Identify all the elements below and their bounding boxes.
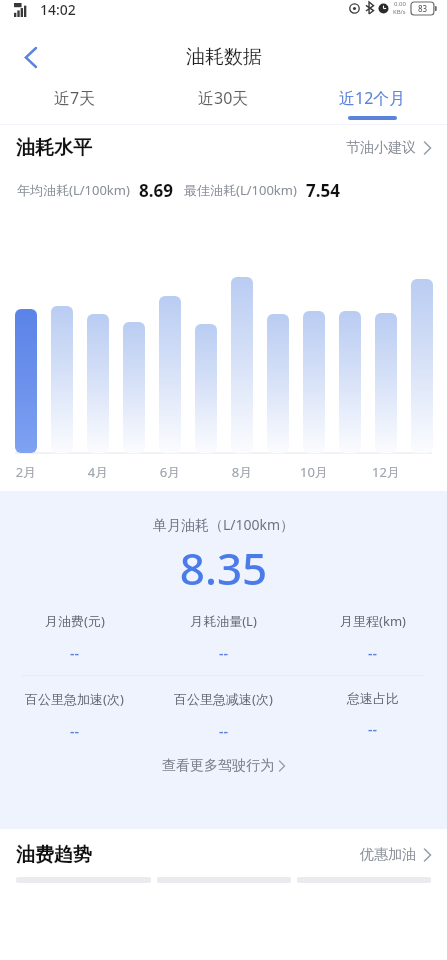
staticText: 年均油耗(L/100km) <box>17 181 130 199</box>
staticText: -- <box>219 644 228 663</box>
staticText: 油费趋势 <box>16 843 92 867</box>
staticText: 14:02 <box>40 0 76 19</box>
staticText: 百公里急减速(次) <box>174 690 273 708</box>
staticText: 百公里急加速(次) <box>25 690 124 708</box>
staticText: 节油小建议 <box>346 139 416 157</box>
staticText: 怠速占比 <box>347 690 399 706</box>
staticText: 月里程(km) <box>340 612 406 630</box>
staticText: 近12个月 <box>339 87 406 109</box>
button[interactable]: 近30天 <box>149 82 298 124</box>
staticText: 8.35 <box>0 538 447 598</box>
staticText: 10月 <box>294 463 334 481</box>
staticText: 最佳油耗(L/100km) <box>184 181 297 199</box>
staticText: 近30天 <box>198 87 249 109</box>
staticText: 月油费(元) <box>45 612 105 630</box>
staticText: 2月 <box>6 463 46 481</box>
staticText: 4月 <box>78 463 118 481</box>
staticText: -- <box>70 644 79 663</box>
staticText: 查看更多驾驶行为 <box>162 757 274 775</box>
staticText: -- <box>219 722 228 741</box>
staticText: 83 <box>418 3 428 14</box>
staticText: 8.69 <box>139 179 173 202</box>
staticText: -- <box>368 644 377 663</box>
staticText: 8月 <box>222 463 262 481</box>
staticText: 0.00 <box>394 0 406 8</box>
staticText: 月耗油量(L) <box>190 612 257 630</box>
staticText: -- <box>368 720 377 739</box>
staticText: 油耗数据 <box>186 45 262 69</box>
button[interactable]: 近7天 <box>0 82 149 124</box>
button[interactable]: 优惠加油 <box>360 846 431 864</box>
button[interactable]: 查看更多驾驶行为 <box>0 757 447 775</box>
button[interactable]: 近12个月 <box>298 82 447 124</box>
staticText: -- <box>70 722 79 741</box>
staticText: 优惠加油 <box>360 846 416 864</box>
staticText: 单月油耗（L/100km） <box>0 515 447 534</box>
staticText: 12月 <box>366 463 406 481</box>
staticText: 7.54 <box>306 179 340 202</box>
button[interactable]: Back <box>8 35 52 79</box>
staticText: 近7天 <box>54 87 96 109</box>
staticText: 6月 <box>150 463 190 481</box>
staticText: 油耗水平 <box>16 136 92 160</box>
staticText: KB/s <box>393 8 406 16</box>
button[interactable]: 节油小建议 <box>346 139 431 157</box>
